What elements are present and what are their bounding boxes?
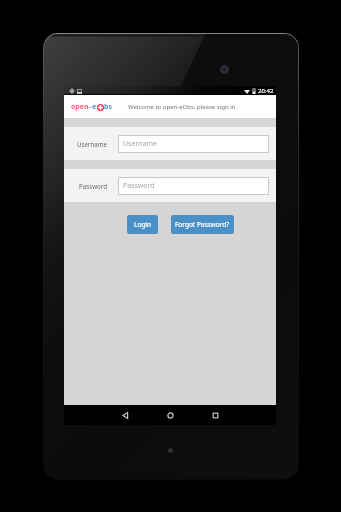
staticText: bs xyxy=(104,102,112,112)
staticText: e xyxy=(92,102,97,112)
button[interactable]: Forgot Password? xyxy=(171,215,234,234)
button[interactable]: Recents xyxy=(206,406,225,425)
button[interactable]: Back xyxy=(116,406,135,425)
staticText: Password xyxy=(64,182,107,190)
staticText: open xyxy=(71,102,89,112)
staticText: Password xyxy=(123,181,155,191)
staticText: Username xyxy=(64,140,107,148)
button[interactable]: Login xyxy=(127,215,158,234)
staticText: Username xyxy=(123,139,158,149)
button[interactable]: Home xyxy=(161,406,180,425)
staticText: 20:42 xyxy=(258,87,274,95)
staticText: Login xyxy=(134,220,152,229)
staticText: Forgot Password? xyxy=(175,220,230,229)
staticText: - xyxy=(89,102,92,112)
staticText: Welcome to open-eObs, please sign in xyxy=(128,103,236,111)
